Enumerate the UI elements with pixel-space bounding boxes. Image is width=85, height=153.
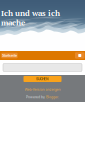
staticText: Web-Version anzeigen [24,87,60,92]
staticText: Blogger. [46,95,59,99]
staticText: Powered by [26,95,45,99]
staticText: mache [1,17,25,28]
staticText: SUCHEN [36,77,49,81]
staticText: Startseite [2,53,17,58]
button[interactable]: Startseite [1,53,18,58]
button[interactable]: Web-Version anzeigen [24,87,60,92]
staticText: Ich und was ich [1,8,60,18]
button[interactable]: SUCHEN [23,76,61,82]
button[interactable]: Search this blog [3,63,82,71]
button[interactable]: Blogger. [46,95,59,99]
button[interactable]: Menu [75,52,84,59]
